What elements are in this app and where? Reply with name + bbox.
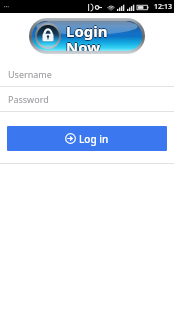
button[interactable]: Password xyxy=(0,87,174,112)
button[interactable]: Username xyxy=(0,62,174,87)
staticText: Login Now xyxy=(66,21,142,51)
staticText: Username xyxy=(8,68,52,80)
staticText: Log in xyxy=(79,132,109,146)
staticText: Login Now xyxy=(66,22,142,51)
button[interactable]: Login Now xyxy=(29,18,145,54)
staticText: Login Now xyxy=(65,21,141,51)
staticText: Login Now xyxy=(67,21,142,51)
staticText: 12:13 xyxy=(154,2,172,12)
staticText: Password xyxy=(8,93,49,105)
staticText: Login Now xyxy=(66,21,142,50)
button[interactable]: Log in xyxy=(7,126,167,151)
